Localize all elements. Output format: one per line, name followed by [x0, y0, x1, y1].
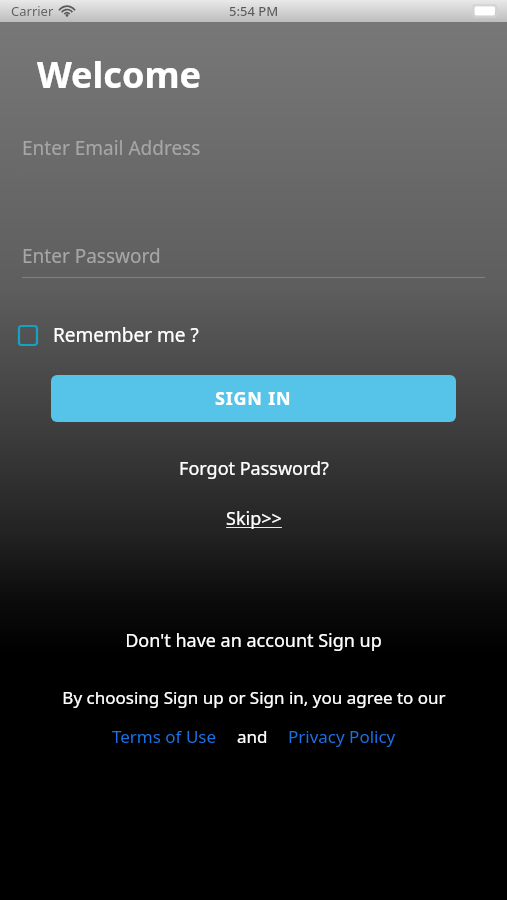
button[interactable]: SIGN IN: [51, 375, 456, 422]
staticText: Welcome: [37, 50, 201, 99]
staticText: Forgot Password?: [179, 456, 329, 481]
staticText: Terms of Use: [112, 725, 217, 748]
button[interactable]: Remember me ?: [18, 322, 199, 348]
button[interactable]: Forgot Password?: [0, 456, 507, 481]
button[interactable]: Don't have an account Sign up: [125, 628, 382, 653]
button[interactable]: Skip>>: [0, 506, 507, 531]
staticText: SIGN IN: [215, 386, 292, 411]
staticText: Privacy Policy: [288, 725, 396, 748]
staticText: 5:54 PM: [229, 2, 279, 20]
staticText: Carrier: [11, 2, 54, 20]
button[interactable]: Enter Password: [22, 239, 485, 273]
staticText: Skip>>: [226, 506, 282, 531]
staticText: Remember me ?: [53, 322, 199, 348]
staticText: Enter Password: [22, 243, 161, 269]
button[interactable]: Privacy Policy: [288, 725, 396, 748]
button[interactable]: Enter Email Address: [22, 131, 485, 165]
staticText: Don't have an account Sign up: [125, 628, 382, 653]
staticText: By choosing Sign up or Sign in, you agre…: [62, 686, 446, 709]
staticText: Enter Email Address: [22, 135, 201, 161]
button[interactable]: Terms of Use: [112, 725, 217, 748]
staticText: and: [237, 725, 268, 748]
